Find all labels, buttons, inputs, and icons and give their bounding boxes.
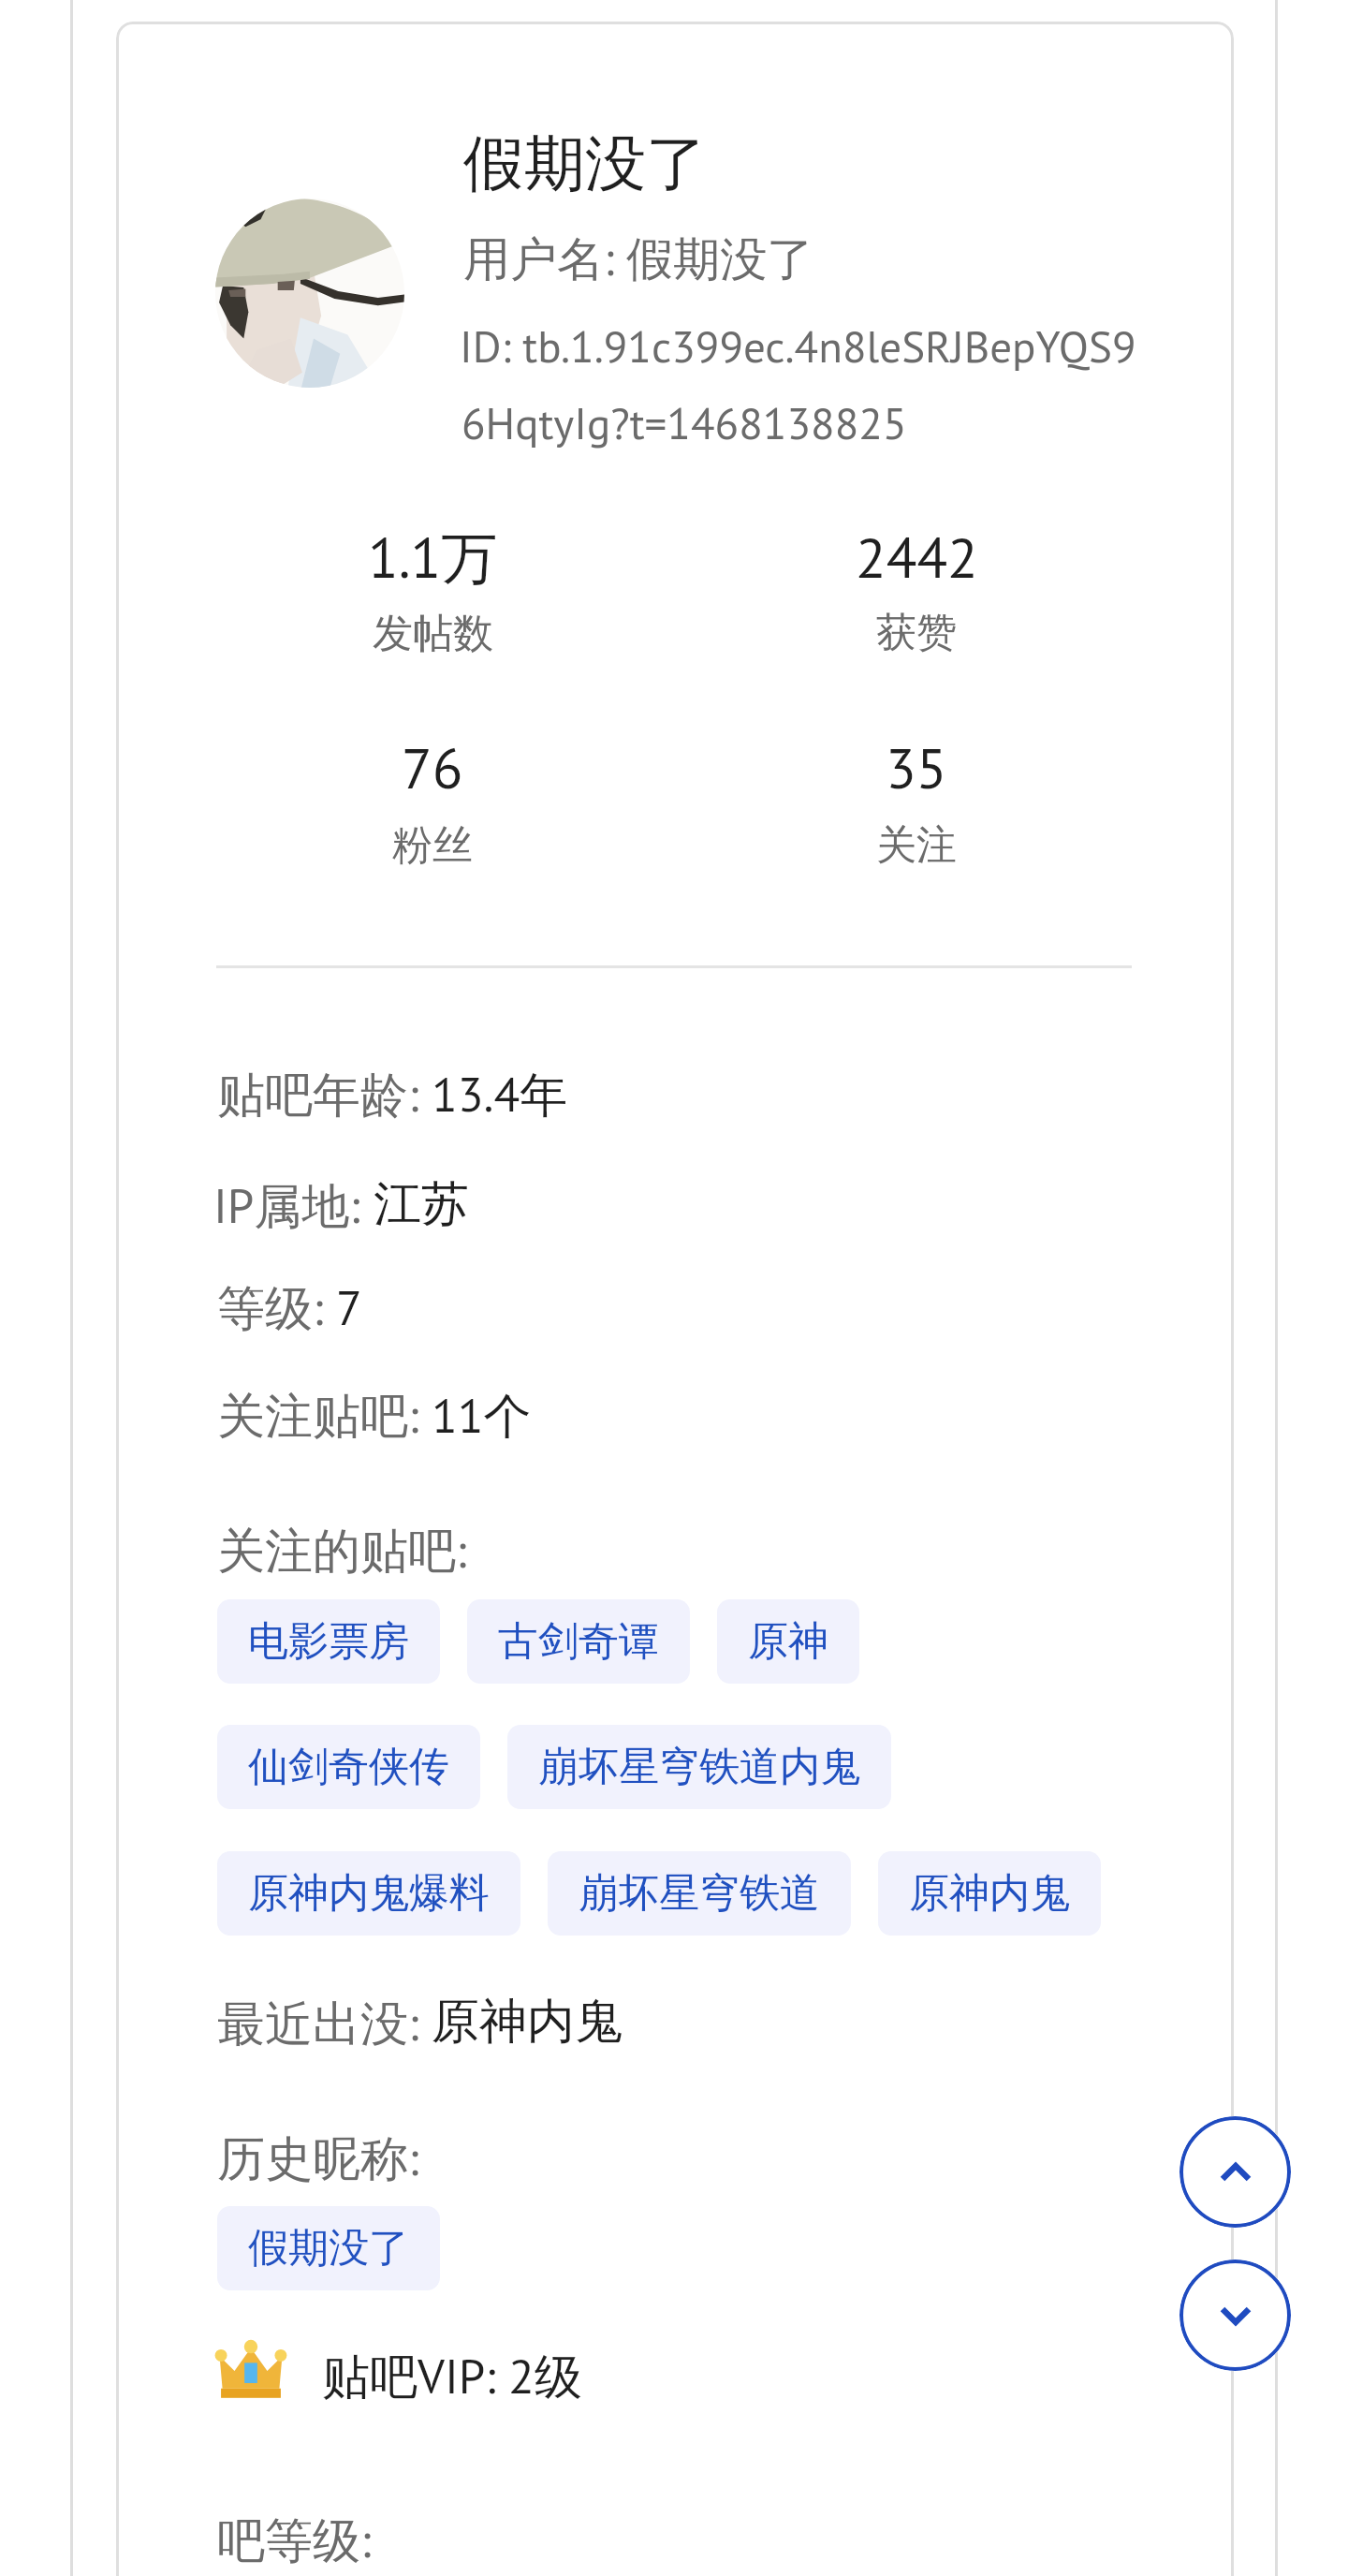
- staticText: 假期没了: [463, 125, 707, 202]
- staticText: 粉丝: [392, 820, 473, 871]
- button[interactable]: 古剑奇谭: [467, 1599, 690, 1684]
- staticText: 崩坏星穹铁道: [579, 1868, 820, 1919]
- staticText: 发帖数: [373, 609, 493, 659]
- button[interactable]: 76: [283, 731, 582, 871]
- button[interactable]: 崩坏星穹铁道: [548, 1851, 851, 1936]
- button[interactable]: 原神: [717, 1599, 859, 1684]
- staticText: 2442: [856, 521, 978, 594]
- staticText: 1.1万: [368, 521, 498, 595]
- staticText: 原神内鬼: [909, 1868, 1070, 1919]
- staticText: ID: tb.1.91c399ec.4n8leSRJBepYQS9: [460, 317, 1136, 375]
- staticText: 35: [886, 731, 947, 804]
- staticText: 假期没了: [248, 2223, 409, 2274]
- staticText: 7: [336, 1276, 362, 1338]
- staticText: 获赞: [876, 608, 957, 658]
- staticText: 贴吧VIP: 2级: [322, 2345, 582, 2407]
- staticText: 仙剑奇侠传: [248, 1742, 449, 1792]
- staticText: 关注贴吧:: [217, 1384, 432, 1447]
- staticText: 电影票房: [248, 1616, 409, 1667]
- button[interactable]: 2442: [767, 521, 1066, 658]
- staticText: 原神内鬼: [432, 1992, 623, 2052]
- button[interactable]: 假期没了: [217, 2206, 440, 2290]
- staticText: 6HqtyIg?t=1468138825: [462, 394, 907, 451]
- staticText: 用户名: 假期没了: [463, 228, 814, 289]
- staticText: 贴吧年龄:: [217, 1063, 432, 1126]
- button[interactable]: 仙剑奇侠传: [217, 1725, 480, 1809]
- staticText: 吧等级:: [217, 2509, 372, 2571]
- staticText: 原神: [748, 1616, 828, 1667]
- staticText: 等级:: [217, 1276, 336, 1339]
- button[interactable]: Scroll up: [1179, 2116, 1291, 2228]
- button[interactable]: 原神内鬼: [878, 1851, 1101, 1936]
- staticText: 76: [402, 731, 463, 804]
- staticText: 原神内鬼爆料: [248, 1868, 490, 1919]
- staticText: 江苏: [374, 1174, 469, 1234]
- button[interactable]: 1.1万: [283, 521, 582, 659]
- staticText: 关注: [876, 820, 957, 871]
- staticText: 最近出没:: [217, 1992, 432, 2054]
- button[interactable]: 原神内鬼爆料: [217, 1851, 520, 1936]
- button[interactable]: 35: [767, 731, 1066, 871]
- button[interactable]: 崩坏星穹铁道内鬼: [507, 1725, 891, 1809]
- staticText: 崩坏星穹铁道内鬼: [538, 1742, 860, 1792]
- staticText: 13.4年: [432, 1063, 568, 1126]
- staticText: 11个: [432, 1384, 532, 1447]
- button[interactable]: 电影票房: [217, 1599, 440, 1684]
- staticText: 历史昵称:: [217, 2127, 419, 2189]
- staticText: 关注的贴吧:: [217, 1519, 467, 1582]
- button[interactable]: Scroll down: [1179, 2260, 1291, 2371]
- staticText: 古剑奇谭: [498, 1616, 659, 1667]
- staticText: IP属地:: [213, 1174, 374, 1237]
